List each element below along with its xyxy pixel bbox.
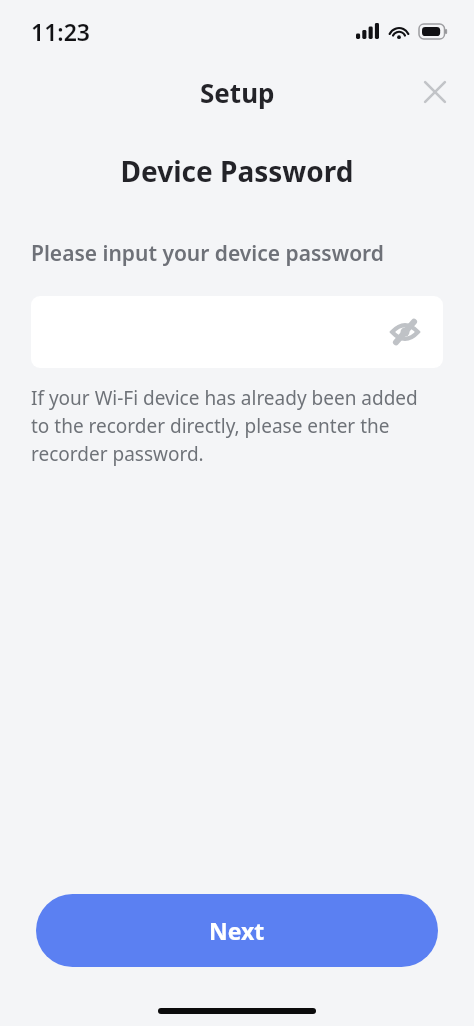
button[interactable]: Next: [36, 894, 438, 967]
staticText: Setup: [200, 75, 275, 110]
staticText: Device Password: [0, 152, 474, 190]
staticText: If your Wi-Fi device has already been ad…: [31, 385, 435, 467]
button[interactable]: Show password: [31, 296, 443, 368]
staticText: 11:23: [31, 16, 90, 47]
staticText: Next: [209, 915, 265, 946]
staticText: Please input your device password: [31, 239, 384, 268]
button[interactable]: Close: [411, 68, 459, 116]
button[interactable]: Show password: [383, 310, 427, 354]
